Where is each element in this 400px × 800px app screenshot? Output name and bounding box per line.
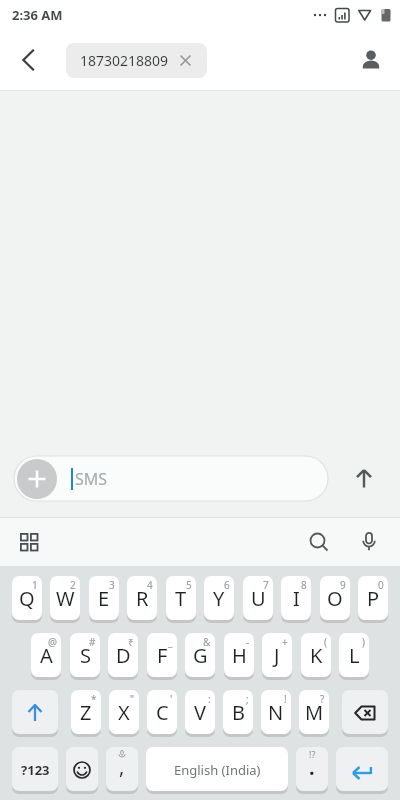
staticText: - [246, 635, 250, 649]
staticText: S [80, 642, 91, 669]
staticText: " [130, 692, 135, 706]
staticText: 18730218809 [80, 51, 169, 70]
button[interactable]: P [358, 576, 388, 621]
staticText: V [194, 699, 206, 726]
staticText: B [232, 699, 245, 726]
button[interactable] [328, 456, 400, 501]
staticText: X [118, 699, 130, 726]
button[interactable]: K [301, 633, 331, 678]
staticText: I [293, 585, 300, 612]
button[interactable]: Y [204, 576, 234, 621]
button[interactable] [66, 747, 98, 792]
button[interactable]: Z [71, 690, 101, 735]
button[interactable] [12, 690, 58, 735]
button[interactable]: H [224, 633, 254, 678]
staticText: . [309, 754, 315, 781]
button[interactable]: C [147, 690, 177, 735]
button[interactable]: O [320, 576, 350, 621]
staticText: D [116, 642, 131, 669]
staticText: ( [324, 635, 327, 649]
staticText: J [274, 642, 280, 669]
staticText: & [203, 635, 211, 649]
staticText: U [251, 585, 266, 612]
staticText: ) [362, 635, 365, 649]
staticText: A [40, 642, 53, 669]
button[interactable]: F [147, 633, 177, 678]
staticText: 4 [147, 578, 153, 592]
staticText: O [327, 585, 343, 612]
button[interactable]: I [281, 576, 311, 621]
staticText: @ [48, 635, 57, 649]
button[interactable]: M [299, 690, 329, 735]
staticText: * [91, 692, 97, 706]
staticText: 7 [263, 578, 269, 592]
staticText: E [98, 585, 110, 612]
button[interactable]: . [296, 747, 328, 792]
staticText: Z [80, 699, 92, 726]
button[interactable]: U [243, 576, 273, 621]
button[interactable] [10, 42, 46, 78]
staticText: 6 [224, 578, 230, 592]
staticText: 9 [340, 578, 346, 592]
button[interactable]: T [166, 576, 196, 621]
staticText: 2:36 AM [12, 6, 63, 24]
button[interactable]: V [185, 690, 215, 735]
staticText: , [119, 753, 125, 780]
staticText: ; [246, 692, 249, 706]
staticText: ₹ [128, 635, 134, 649]
staticText: W [56, 585, 75, 612]
button[interactable]: ?123 [12, 747, 58, 792]
button[interactable]: Q [12, 576, 42, 621]
staticText: 2 [70, 578, 76, 592]
staticText: 1 [32, 578, 38, 592]
button[interactable]: S [70, 633, 100, 678]
staticText: + [282, 635, 288, 649]
staticText: # [89, 635, 96, 649]
staticText: !? [309, 748, 316, 760]
staticText: 8 [301, 578, 307, 592]
staticText: K [310, 642, 323, 669]
staticText: M [305, 699, 324, 726]
staticText: P [367, 585, 380, 612]
staticText: R [136, 585, 149, 612]
button[interactable]: SMS [14, 456, 328, 501]
button[interactable] [346, 518, 392, 566]
staticText: ?123 [21, 761, 50, 779]
button[interactable]: 18730218809 [66, 43, 207, 78]
button[interactable]: B [223, 690, 253, 735]
button[interactable]: R [127, 576, 157, 621]
button[interactable] [17, 459, 57, 499]
staticText: ' [170, 692, 173, 706]
button[interactable]: W [50, 576, 80, 621]
staticText: ! [284, 692, 287, 706]
staticText: G [193, 642, 208, 669]
button[interactable]: , [106, 747, 138, 792]
button[interactable] [356, 45, 386, 75]
button[interactable]: English (India) [146, 747, 288, 792]
button[interactable] [342, 690, 388, 735]
button[interactable]: L [339, 633, 369, 678]
staticText: H [232, 642, 247, 669]
staticText: 3 [109, 578, 115, 592]
staticText: T [175, 585, 187, 612]
button[interactable] [336, 747, 388, 792]
button[interactable]: X [109, 690, 139, 735]
staticText: Y [213, 585, 225, 612]
staticText: 0 [378, 578, 384, 592]
staticText: 5 [186, 578, 192, 592]
button[interactable]: E [89, 576, 119, 621]
staticText: L [349, 642, 360, 669]
button[interactable]: N [261, 690, 291, 735]
button[interactable]: J [262, 633, 292, 678]
button[interactable] [0, 518, 58, 566]
staticText: F [157, 642, 168, 669]
staticText: N [268, 699, 284, 726]
button[interactable]: A [31, 633, 61, 678]
staticText: _ [168, 635, 173, 649]
staticText: : [208, 692, 211, 706]
button[interactable]: D [108, 633, 138, 678]
staticText: C [156, 699, 169, 726]
button[interactable]: G [185, 633, 215, 678]
button[interactable] [296, 518, 342, 566]
staticText: ? [320, 692, 325, 706]
